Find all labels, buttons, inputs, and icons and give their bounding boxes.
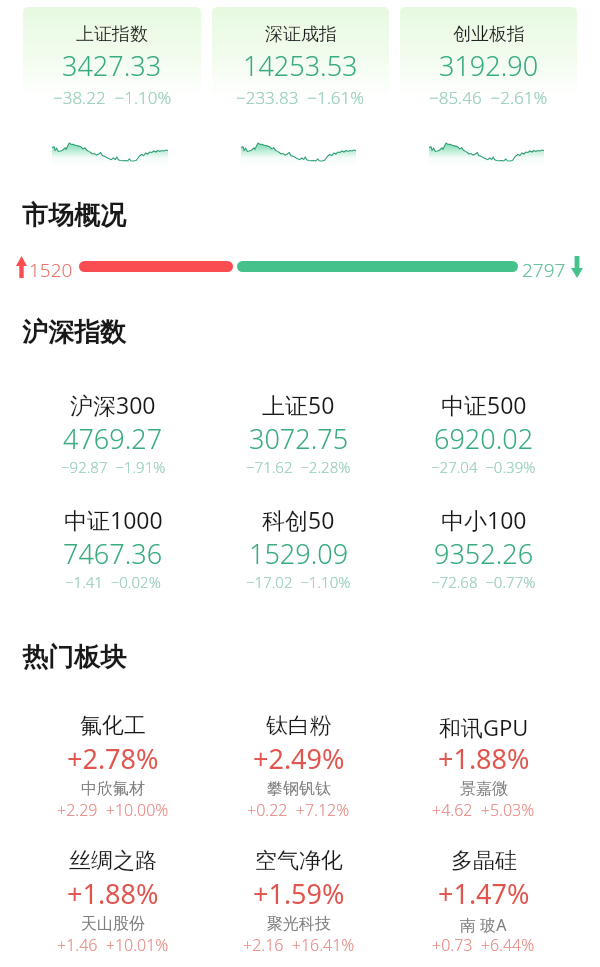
button[interactable]: 空气净化 [206, 847, 391, 967]
staticText: 科创50 [262, 504, 335, 535]
staticText: 创业板指 [453, 23, 525, 46]
staticText: 14253.53 [243, 47, 358, 84]
button[interactable]: 市场概况 [22, 199, 126, 232]
staticText: 4769.27 [63, 420, 163, 457]
staticText: −17.02 −1.10% [246, 572, 351, 592]
staticText: +1.46 +10.01% [57, 934, 169, 956]
staticText: −92.87 −1.91% [61, 457, 166, 477]
staticText: 沪深指数 [22, 316, 126, 349]
button[interactable]: 钛白粉 [206, 712, 391, 832]
staticText: +2.29 +10.00% [57, 799, 169, 821]
staticText: −85.46 −2.61% [429, 86, 548, 109]
staticText: −233.83 −1.61% [236, 86, 365, 109]
staticText: 2797 [522, 257, 566, 283]
staticText: 中小100 [441, 504, 527, 535]
staticText: +2.78% [67, 740, 159, 777]
staticText: 上证指数 [76, 23, 148, 46]
button[interactable]: 和讯GPU [391, 712, 576, 832]
staticText: 1520 [29, 257, 73, 283]
staticText: +2.16 +16.41% [243, 934, 355, 956]
staticText: +1.88% [438, 740, 530, 777]
staticText: 多晶硅 [451, 847, 517, 875]
staticText: −71.62 −2.28% [246, 457, 351, 477]
staticText: 钛白粉 [266, 712, 332, 740]
staticText: 和讯GPU [439, 712, 529, 742]
button[interactable]: 上证50 [206, 391, 391, 487]
staticText: 市场概况 [22, 199, 126, 232]
button[interactable]: 中小100 [391, 506, 576, 602]
staticText: +1.59% [253, 875, 345, 912]
staticText: +0.22 +7.12% [247, 799, 350, 821]
staticText: +0.73 +6.44% [432, 934, 535, 956]
button[interactable]: 沪深指数 [22, 316, 126, 349]
staticText: 南 玻A [460, 914, 507, 936]
staticText: 9352.26 [434, 535, 534, 572]
staticText: −1.41 −0.02% [65, 572, 161, 592]
staticText: 深证成指 [265, 23, 337, 46]
staticText: 中证500 [441, 389, 527, 420]
staticText: 3427.33 [62, 47, 162, 84]
button[interactable]: 中证1000 [20, 506, 206, 602]
staticText: 3072.75 [249, 420, 349, 457]
staticText: −27.04 −0.39% [431, 457, 536, 477]
button[interactable]: 上证指数 [23, 7, 201, 120]
button[interactable]: 多晶硅 [391, 847, 576, 967]
staticText: 空气净化 [255, 847, 343, 875]
staticText: −38.22 −1.10% [53, 86, 172, 109]
staticText: +2.49% [253, 740, 345, 777]
staticText: 聚光科技 [267, 914, 331, 934]
staticText: −72.68 −0.77% [431, 572, 536, 592]
staticText: 攀钢钒钛 [267, 779, 331, 799]
button[interactable]: 热门板块 [22, 641, 126, 674]
staticText: 中欣氟材 [81, 779, 145, 799]
button[interactable]: 丝绸之路 [20, 847, 206, 967]
staticText: 6920.02 [434, 420, 534, 457]
button[interactable]: 中证500 [391, 391, 576, 487]
button[interactable]: 科创50 [206, 506, 391, 602]
button[interactable]: 氟化工 [20, 712, 206, 832]
staticText: 天山股份 [81, 914, 145, 934]
staticText: 景嘉微 [460, 779, 508, 799]
staticText: 1529.09 [249, 535, 349, 572]
staticText: +4.62 +5.03% [432, 799, 535, 821]
other: Decliners [571, 256, 583, 278]
other: Advancers [16, 256, 27, 278]
button[interactable]: 沪深300 [20, 391, 206, 487]
staticText: 上证50 [262, 389, 335, 420]
staticText: 热门板块 [22, 641, 126, 674]
staticText: +1.88% [67, 875, 159, 912]
staticText: 7467.36 [63, 535, 163, 572]
staticText: 中证1000 [64, 504, 163, 535]
staticText: 3192.90 [439, 47, 539, 84]
button[interactable]: 创业板指 [400, 7, 577, 120]
staticText: 丝绸之路 [69, 847, 157, 875]
staticText: 沪深300 [70, 389, 156, 420]
staticText: +1.47% [438, 875, 530, 912]
button[interactable]: 深证成指 [212, 7, 389, 120]
staticText: 氟化工 [80, 712, 146, 740]
